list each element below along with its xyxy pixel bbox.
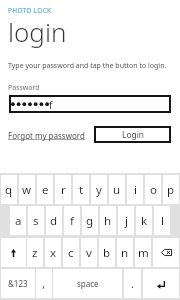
staticText: v [86, 245, 92, 261]
button[interactable]: r [55, 175, 71, 204]
staticText: g [86, 213, 94, 229]
staticText: j [125, 213, 128, 229]
button[interactable]: o [145, 175, 161, 204]
staticText: PHOTO LOCK [8, 6, 52, 15]
button[interactable]: n [117, 238, 133, 267]
button[interactable]: w [19, 175, 35, 204]
button[interactable]: a [10, 206, 26, 235]
staticText: space [77, 278, 99, 289]
staticText: o [150, 182, 157, 198]
staticText: u [113, 182, 121, 198]
button[interactable]: Shift [1, 238, 26, 267]
staticText: &123 [8, 278, 28, 289]
button[interactable]: i [127, 175, 143, 204]
staticText: c [68, 245, 74, 261]
button[interactable]: z [27, 238, 43, 267]
button[interactable]: e [37, 175, 53, 204]
staticText: f [49, 98, 53, 112]
staticText: login [8, 14, 67, 49]
staticText: i [134, 182, 137, 198]
button[interactable]: s [28, 206, 44, 235]
button[interactable]: space [53, 269, 122, 298]
button[interactable]: Forgot my password [8, 130, 85, 141]
button[interactable]: y [91, 175, 107, 204]
button[interactable]: k [136, 206, 152, 235]
button[interactable]: h [100, 206, 116, 235]
button[interactable]: , [36, 269, 52, 298]
button[interactable]: g [82, 206, 98, 235]
button[interactable]: m [135, 238, 151, 267]
staticText: d [50, 213, 58, 229]
staticText: p [167, 182, 175, 198]
staticText: . [131, 276, 135, 292]
staticText: z [32, 245, 38, 261]
button[interactable]: Backspace [153, 238, 179, 267]
button[interactable]: q [1, 175, 17, 204]
staticText: Type your password and tap the button to… [8, 61, 167, 71]
button[interactable]: d [46, 206, 62, 235]
button[interactable]: p [163, 175, 179, 204]
staticText: x [50, 245, 57, 261]
button[interactable]: c [63, 238, 79, 267]
button[interactable]: &123 [1, 269, 35, 298]
button[interactable]: f [64, 206, 80, 235]
staticText: b [103, 245, 111, 261]
button[interactable]: j [118, 206, 134, 235]
button[interactable]: b [99, 238, 115, 267]
button[interactable]: l [154, 206, 170, 235]
staticText: e [42, 182, 49, 198]
staticText: Password [8, 83, 40, 93]
staticText: k [141, 213, 148, 229]
staticText: s [33, 213, 39, 229]
staticText: q [5, 182, 13, 198]
button[interactable]: t [73, 175, 89, 204]
staticText: l [161, 213, 164, 229]
staticText: , [42, 276, 46, 292]
staticText: t [79, 182, 84, 198]
staticText: r [61, 182, 66, 198]
button[interactable]: . [124, 269, 141, 298]
staticText: n [121, 245, 129, 261]
button[interactable]: x [45, 238, 61, 267]
button[interactable]: v [81, 238, 97, 267]
staticText: w [22, 182, 32, 198]
button[interactable]: f [9, 95, 171, 113]
staticText: h [104, 213, 112, 229]
staticText: m [138, 245, 149, 261]
staticText: a [15, 213, 22, 229]
button[interactable]: Enter [143, 269, 179, 298]
staticText: Forgot my password [8, 130, 85, 141]
button[interactable]: u [109, 175, 125, 204]
staticText: Login [122, 129, 144, 140]
button[interactable]: Login [94, 126, 171, 143]
staticText: f [70, 213, 74, 229]
staticText: y [96, 182, 102, 198]
